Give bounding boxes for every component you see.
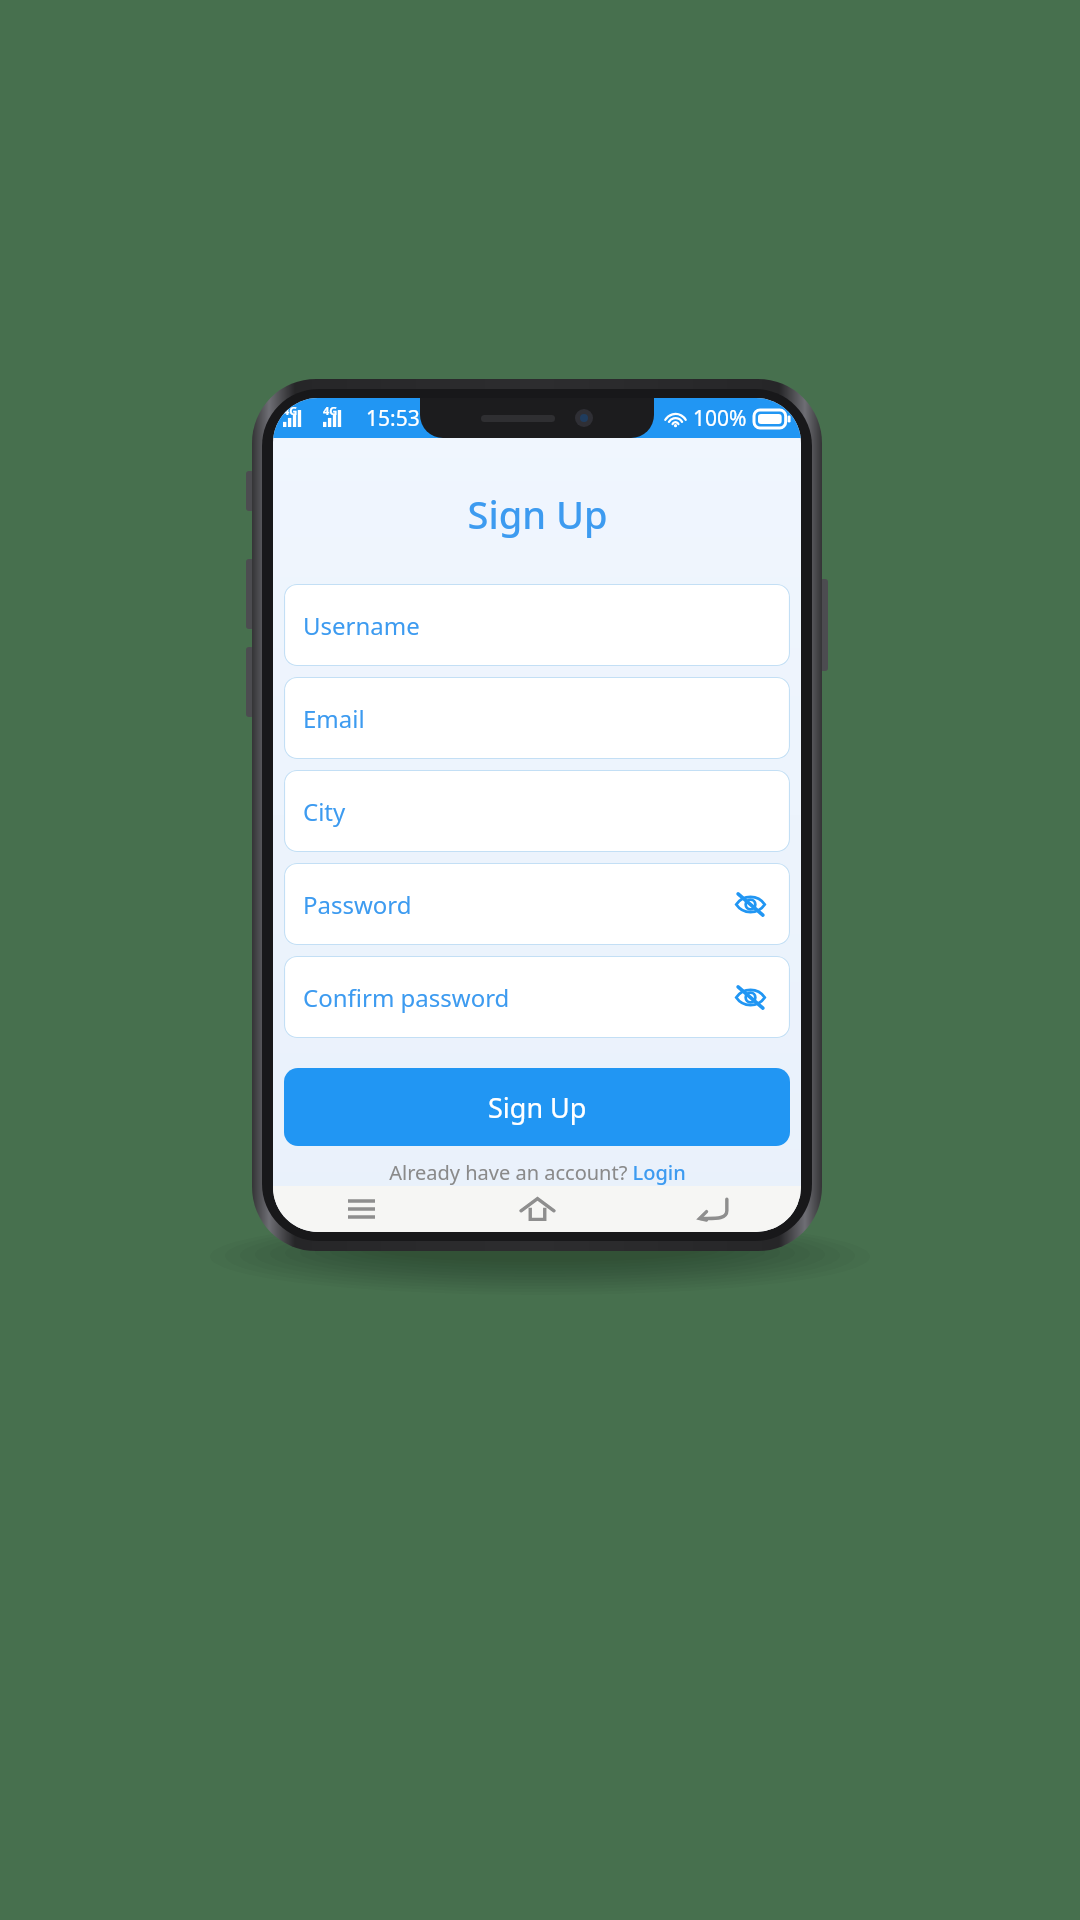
button[interactable]: Password [284, 863, 790, 945]
staticText: 4G [323, 403, 338, 418]
button[interactable]: City [284, 770, 790, 852]
button[interactable]: Email [284, 677, 790, 759]
staticText: Sign Up [488, 1089, 587, 1126]
staticText: Username [303, 609, 420, 642]
button[interactable]: Sign Up [284, 1068, 790, 1146]
button[interactable]: Already have an account? Login [284, 1159, 790, 1186]
staticText: 4G [283, 403, 298, 418]
staticText: City [303, 795, 346, 828]
staticText: Password [303, 888, 412, 921]
button[interactable]: Show password [728, 882, 772, 926]
staticText: Confirm password [303, 981, 510, 1014]
staticText: Already have an account? Login [389, 1159, 686, 1186]
staticText: Sign Up [467, 488, 608, 540]
button[interactable]: Home [491, 1186, 583, 1232]
button[interactable]: Username [284, 584, 790, 666]
button[interactable]: Menu [315, 1186, 407, 1232]
staticText: 100% [693, 404, 747, 433]
button[interactable]: Confirm password [284, 956, 790, 1038]
button[interactable]: Show password [728, 975, 772, 1019]
button[interactable]: Back [667, 1186, 759, 1232]
staticText: Email [303, 702, 365, 735]
staticText: 15:53 [366, 404, 420, 433]
